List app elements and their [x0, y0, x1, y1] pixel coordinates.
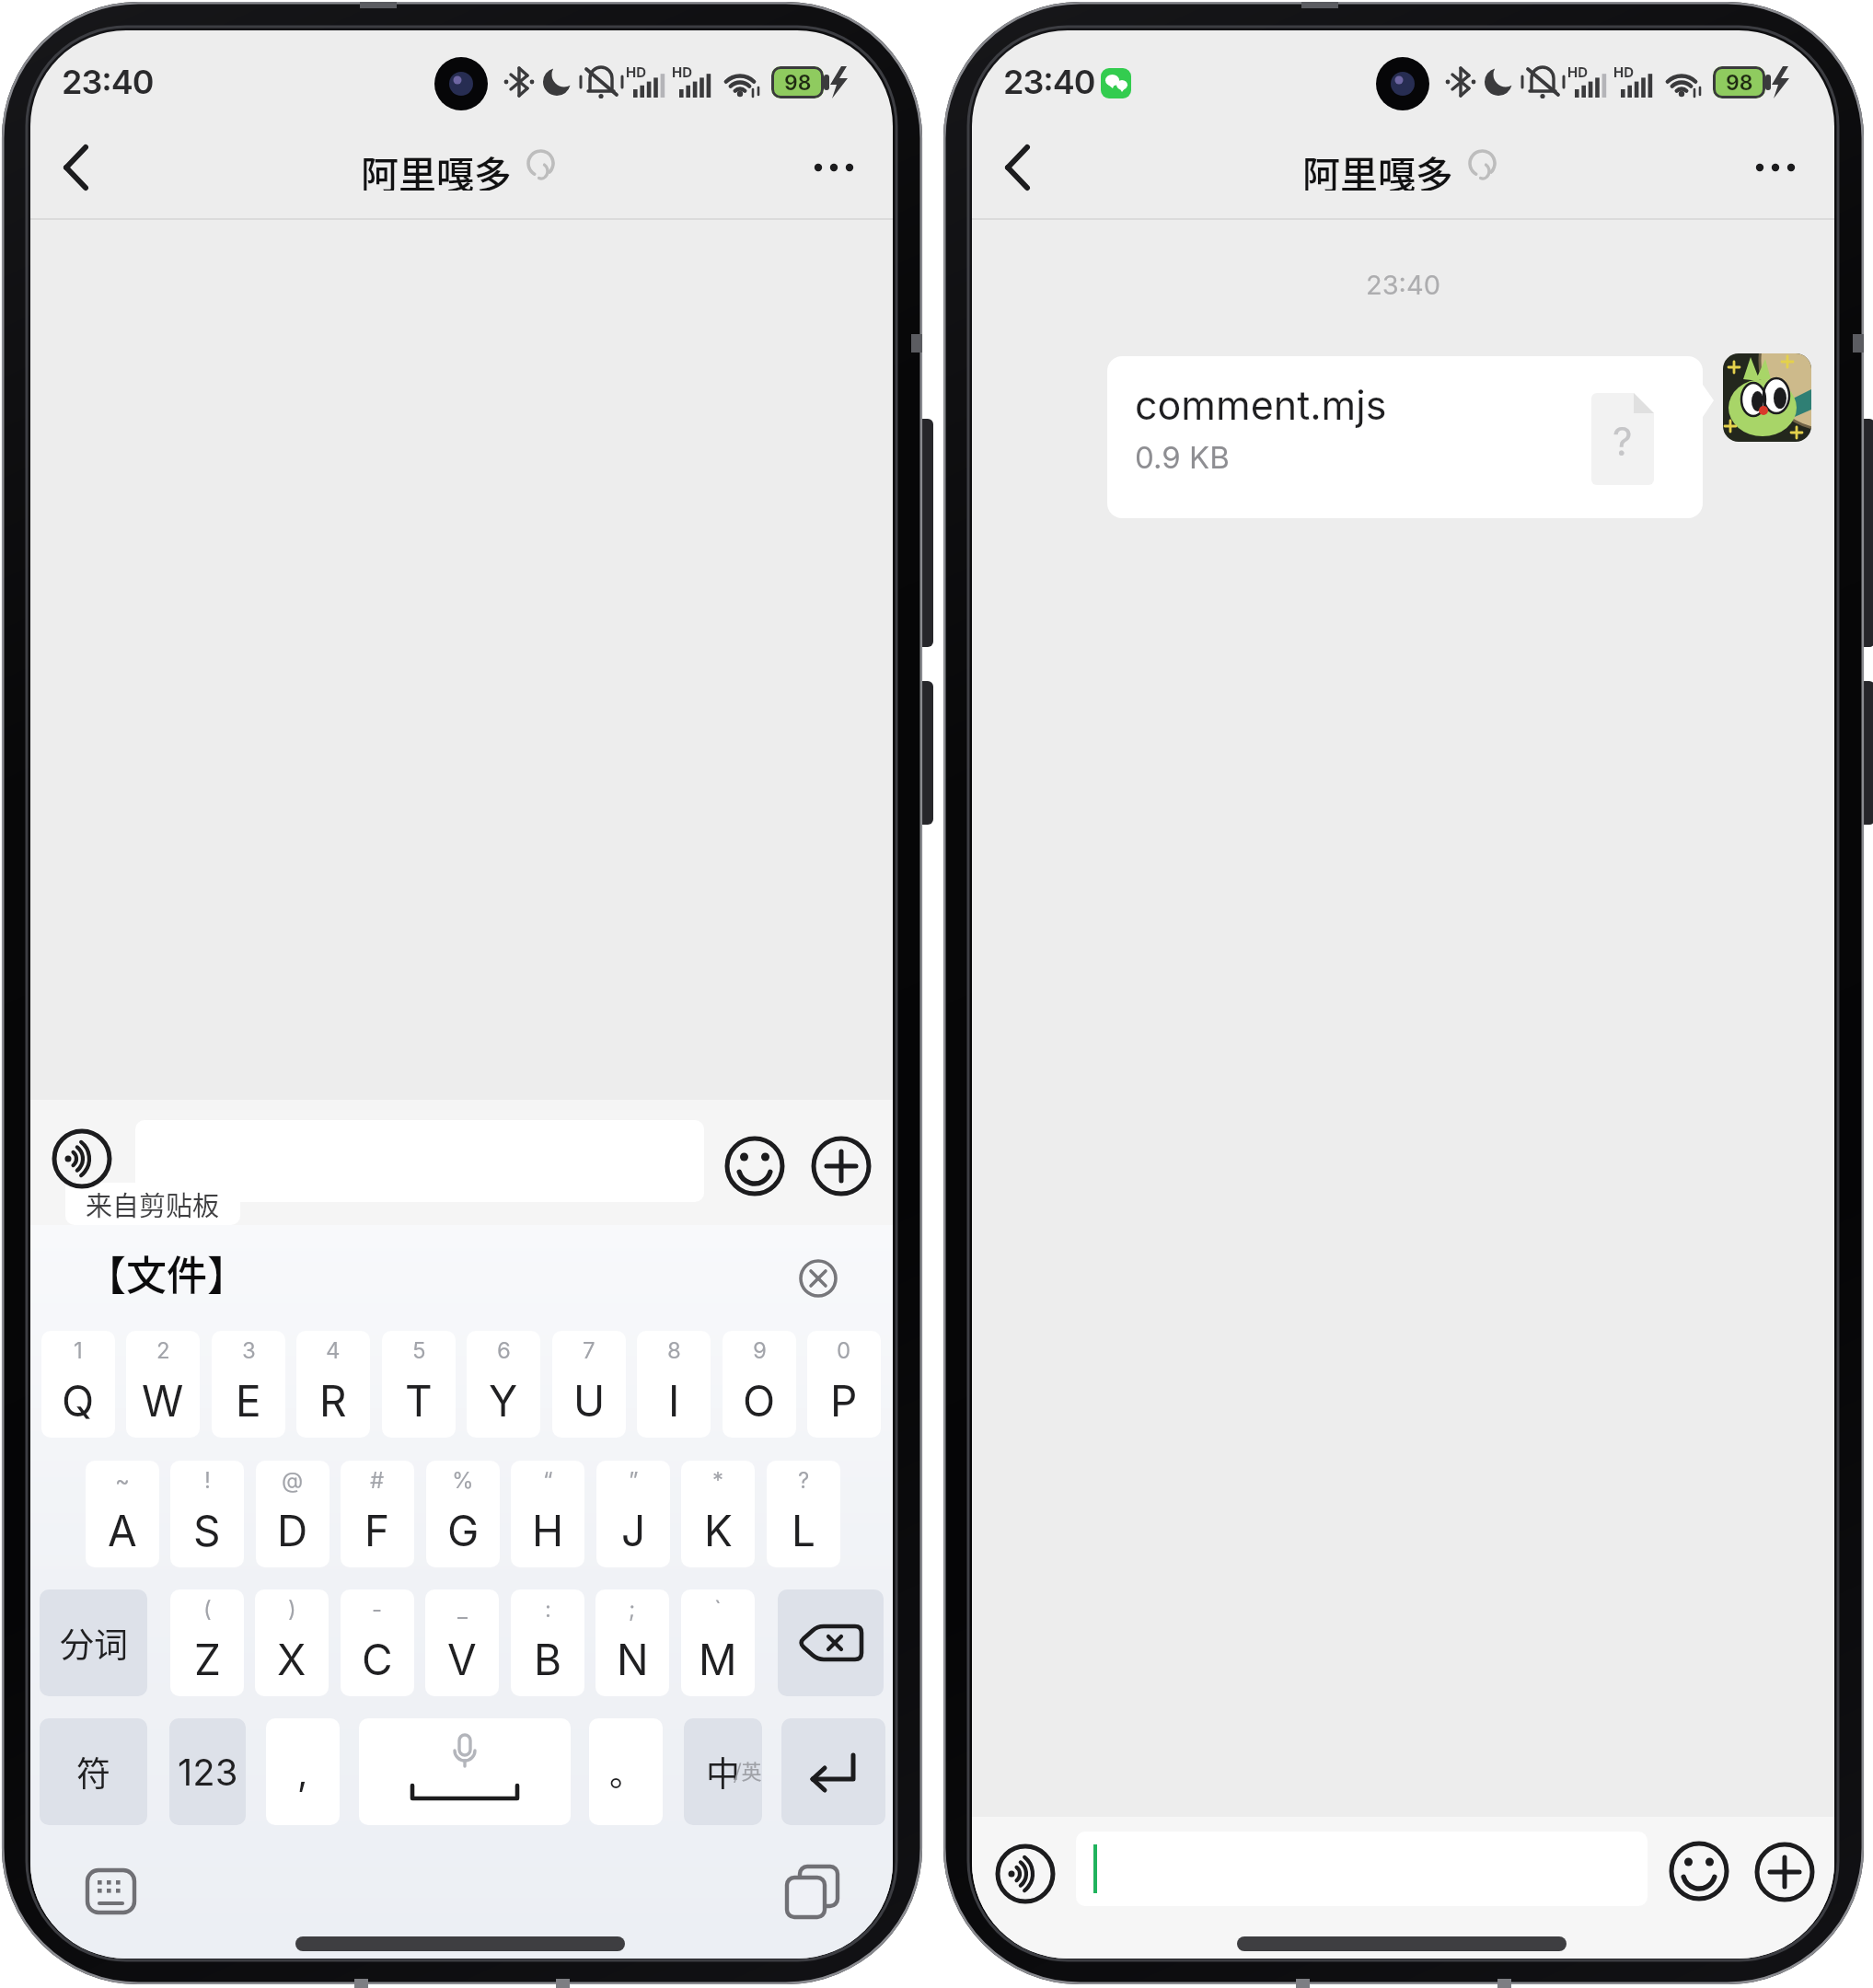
staticText: 98 [1726, 70, 1753, 96]
button[interactable] [1736, 136, 1819, 201]
button[interactable]: ; [595, 1589, 669, 1696]
button[interactable]: # [341, 1461, 414, 1567]
button[interactable]: 8 [637, 1331, 711, 1438]
button[interactable]: 7 [552, 1331, 626, 1438]
staticText: 阿里嘎多 [361, 144, 512, 191]
staticText: 来自剪贴板 [86, 1185, 220, 1223]
button[interactable]: ( [170, 1589, 244, 1696]
staticText: 7 [583, 1337, 595, 1364]
button[interactable]: 2 [126, 1331, 200, 1438]
staticText: 0 [837, 1337, 851, 1364]
button[interactable] [684, 1718, 762, 1825]
staticText: ~ [115, 1467, 130, 1494]
staticText: ( [203, 1596, 212, 1623]
staticText: 23:40 [1366, 269, 1440, 301]
staticText: 。 [609, 1747, 643, 1797]
button[interactable]: @ [256, 1461, 330, 1567]
staticText: HD [626, 64, 647, 78]
staticText: * [712, 1467, 724, 1494]
button[interactable]: 。 [589, 1718, 663, 1825]
button[interactable] [76, 1857, 150, 1926]
staticText: ; [629, 1596, 636, 1623]
staticText: ” [629, 1467, 639, 1494]
button[interactable]: 3 [212, 1331, 285, 1438]
button[interactable]: 分词 [40, 1589, 147, 1696]
staticText: O [743, 1375, 776, 1427]
button[interactable]: 符 [40, 1718, 147, 1825]
staticText: U [573, 1375, 606, 1427]
staticText: 3 [242, 1337, 256, 1364]
staticText: _ [457, 1596, 468, 1623]
button[interactable] [791, 1251, 846, 1306]
staticText: B [534, 1634, 562, 1685]
button[interactable]: 0 [807, 1331, 881, 1438]
staticText: “ [543, 1467, 553, 1494]
staticText: T [405, 1375, 433, 1427]
button[interactable]: , [266, 1718, 340, 1825]
staticText: L [792, 1505, 816, 1556]
staticText: S [193, 1505, 221, 1556]
staticText: /英 [734, 1755, 762, 1785]
staticText: - [372, 1596, 383, 1623]
staticText: HD [1567, 64, 1589, 78]
button[interactable]: * [681, 1461, 755, 1567]
staticText: 阿里嘎多 [1302, 144, 1453, 191]
button[interactable]: ` [681, 1589, 755, 1696]
button[interactable]: - [341, 1589, 414, 1696]
staticText: M [699, 1634, 737, 1685]
button[interactable]: 5 [382, 1331, 456, 1438]
button[interactable]: ! [170, 1461, 244, 1567]
button[interactable]: : [511, 1589, 584, 1696]
staticText: , [297, 1750, 308, 1794]
staticText: 【文件】 [86, 1243, 248, 1300]
staticText: N [617, 1634, 649, 1685]
button[interactable]: 123 [169, 1718, 246, 1825]
staticText: % [452, 1467, 474, 1494]
button[interactable] [778, 1589, 884, 1696]
button[interactable] [135, 1120, 704, 1202]
button[interactable] [1107, 356, 1703, 518]
staticText: J [621, 1505, 646, 1556]
button[interactable]: 1 [41, 1331, 115, 1438]
staticText: 5 [412, 1337, 426, 1364]
button[interactable]: ” [596, 1461, 670, 1567]
staticText: F [364, 1505, 390, 1556]
staticText: 分词 [60, 1618, 128, 1668]
staticText: R [319, 1375, 347, 1427]
button[interactable] [1076, 1832, 1648, 1906]
staticText: 123 [178, 1750, 238, 1794]
staticText: V [447, 1634, 477, 1685]
button[interactable]: % [426, 1461, 500, 1567]
staticText: P [830, 1375, 858, 1427]
button[interactable]: 4 [296, 1331, 370, 1438]
button[interactable] [794, 136, 877, 201]
staticText: 符 [76, 1747, 110, 1797]
button[interactable]: “ [511, 1461, 584, 1567]
button[interactable]: 来自剪贴板 [65, 1183, 240, 1225]
staticText: K [704, 1505, 733, 1556]
staticText: ? [798, 1467, 810, 1494]
staticText: D [277, 1505, 308, 1556]
button[interactable] [990, 136, 1055, 201]
staticText: Y [489, 1375, 518, 1427]
staticText: # [370, 1467, 385, 1494]
staticText: E [236, 1375, 261, 1427]
button[interactable]: ~ [86, 1461, 159, 1567]
button[interactable]: ? [767, 1461, 840, 1567]
staticText: Q [62, 1375, 95, 1427]
staticText: : [545, 1596, 551, 1623]
staticText: 6 [497, 1337, 511, 1364]
button[interactable]: 6 [467, 1331, 540, 1438]
button[interactable]: _ [425, 1589, 499, 1696]
button[interactable] [49, 136, 113, 201]
button[interactable] [776, 1857, 850, 1926]
staticText: @ [282, 1467, 304, 1494]
button[interactable] [359, 1718, 571, 1825]
staticText: 2 [156, 1337, 170, 1364]
staticText: A [108, 1505, 137, 1556]
button[interactable]: ) [255, 1589, 329, 1696]
button[interactable]: 9 [723, 1331, 796, 1438]
staticText: ? [1613, 418, 1633, 465]
staticText: X [277, 1634, 306, 1685]
button[interactable] [781, 1718, 885, 1825]
